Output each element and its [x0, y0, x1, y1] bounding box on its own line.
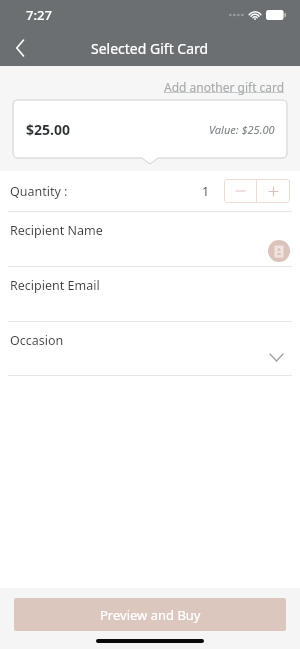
- button[interactable]: Increase quantity: [257, 179, 290, 203]
- button[interactable]: Recipient Name: [0, 212, 300, 266]
- staticText: Preview and Buy: [100, 606, 201, 624]
- staticText: $25.00: [26, 120, 70, 139]
- button[interactable]: Back: [0, 30, 40, 66]
- staticText: Occasion: [10, 332, 64, 349]
- staticText: Quantity :: [10, 183, 68, 200]
- staticText: Value: $25.00: [209, 122, 275, 137]
- button[interactable]: Choose contact: [268, 240, 290, 262]
- button[interactable]: Occasion: [0, 322, 300, 375]
- staticText: Recipient Name: [10, 222, 103, 239]
- staticText: 7:27: [26, 6, 52, 24]
- button[interactable]: Decrease quantity: [224, 179, 256, 203]
- button[interactable]: Preview and Buy: [14, 598, 286, 631]
- button[interactable]: Select occasion: [266, 347, 286, 367]
- button[interactable]: Add another gift card: [164, 79, 285, 95]
- button[interactable]: Recipient Email: [0, 267, 300, 321]
- staticText: Recipient Email: [10, 277, 100, 294]
- staticText: 1: [202, 183, 210, 200]
- staticText: Selected Gift Card: [91, 39, 209, 58]
